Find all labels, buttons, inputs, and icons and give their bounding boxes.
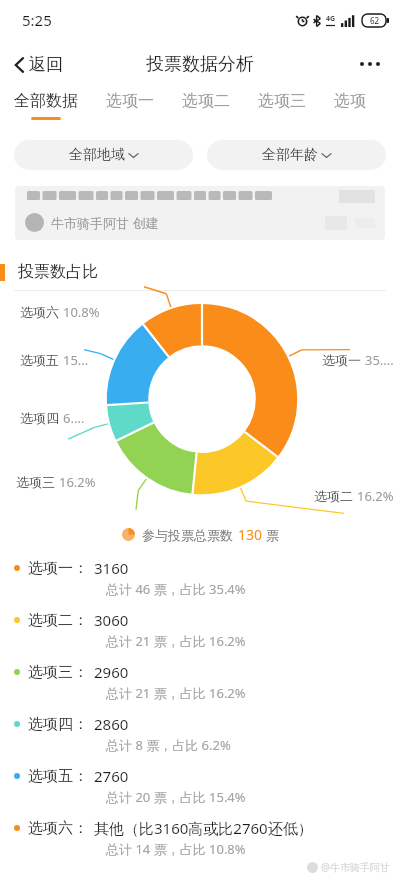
staticText: 35.... (365, 351, 394, 369)
button[interactable]: 返回 (8, 50, 69, 79)
staticText: 选项三 (16, 474, 55, 490)
staticText: 牛市骑手阿甘 创建 (51, 214, 159, 232)
staticText: 选项五 (20, 352, 59, 368)
button[interactable]: 选项一： (14, 556, 390, 600)
staticText: 2760 (94, 766, 129, 786)
button[interactable]: 选项五： (14, 764, 390, 808)
staticText: 130 (238, 525, 263, 544)
button[interactable]: 选项二 (182, 88, 230, 117)
button[interactable]: 全部地域 (14, 140, 193, 170)
button[interactable]: 选项一 (106, 88, 154, 117)
button[interactable]: 全部数据 (14, 88, 78, 120)
staticText: 3160 (94, 558, 129, 578)
button[interactable]: 选项六： (14, 816, 390, 860)
staticText: 选项三： (28, 663, 88, 682)
staticText: 选项一 (322, 352, 361, 368)
staticText: 2960 (94, 662, 129, 682)
staticText: 选项五： (28, 767, 88, 786)
staticText: 选项一： (28, 559, 88, 578)
staticText: 投票数占比 (18, 262, 98, 282)
button[interactable]: 选项三 (258, 88, 306, 117)
staticText: 16.2% (59, 473, 96, 491)
staticText: 16.2% (357, 487, 394, 505)
staticText: 62 (370, 15, 380, 26)
staticText: 5:25 (22, 10, 52, 30)
staticText: 选项四 (20, 410, 59, 426)
button[interactable]: 选项四： (14, 712, 390, 756)
staticText: 总计 21 票，占比 16.2% (106, 684, 246, 702)
staticText: 总计 46 票，占比 35.4% (106, 580, 246, 598)
staticText: 总计 8 票，占比 6.2% (106, 736, 231, 754)
button[interactable]: 选项二： (14, 608, 390, 652)
button[interactable]: 选项三： (14, 660, 390, 704)
staticText: 6.... (63, 409, 85, 427)
button[interactable]: 全部年龄 (207, 140, 386, 170)
staticText: 选项二 (314, 488, 353, 504)
staticText: 投票数据分析 (146, 53, 254, 76)
staticText: 选项六： (28, 819, 88, 838)
staticText: @牛市骑手阿甘 (321, 860, 390, 874)
staticText: 10.8% (63, 303, 100, 321)
staticText: 票 (266, 527, 279, 543)
staticText: 2860 (94, 714, 129, 734)
staticText: 4G (326, 14, 336, 24)
staticText: 总计 20 票，占比 15.4% (106, 788, 246, 806)
button[interactable]: 选项 (334, 88, 366, 117)
staticText: 选项一 (106, 91, 154, 111)
staticText: 其他（比3160高或比2760还低） (94, 818, 313, 838)
staticText: 全部地域 (69, 146, 125, 164)
staticText: 返回 (29, 54, 63, 75)
staticText: 全部年龄 (262, 146, 318, 164)
staticText: 3060 (94, 610, 129, 630)
button[interactable]: 牛市骑手阿甘 创建 (15, 186, 385, 240)
staticText: 选项 (334, 91, 366, 111)
staticText: 选项二： (28, 611, 88, 630)
staticText: 总计 14 票，占比 10.8% (106, 840, 246, 858)
staticText: 总计 21 票，占比 16.2% (106, 632, 246, 650)
staticText: 选项三 (258, 91, 306, 111)
button[interactable]: More options (352, 54, 388, 74)
staticText: 选项二 (182, 91, 230, 111)
staticText: 参与投票总票数 (142, 527, 233, 543)
staticText: 选项六 (20, 304, 59, 320)
staticText: 全部数据 (14, 91, 78, 111)
staticText: 15... (63, 351, 89, 369)
staticText: 选项四： (28, 715, 88, 734)
